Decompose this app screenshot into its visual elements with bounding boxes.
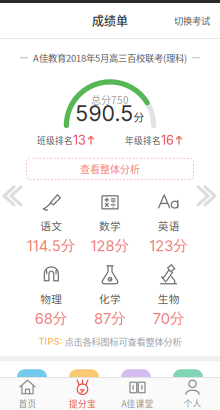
staticText: 70分 — [153, 309, 185, 328]
staticText: 数学 — [99, 218, 121, 233]
staticText: 年级排名 — [125, 134, 161, 146]
staticText: 590.5 — [75, 100, 133, 126]
staticText: TIPS: — [38, 336, 62, 347]
staticText: 13 — [73, 132, 86, 148]
staticText: 提升练习 — [166, 404, 210, 410]
button[interactable]: 物理 — [22, 259, 81, 331]
staticText: 提分宝 — [69, 397, 96, 410]
staticText: 16 — [161, 132, 174, 148]
button[interactable]: 数学 — [81, 186, 139, 258]
staticText: 分 — [133, 109, 144, 124]
staticText: 点击各科图标可查看整体分析 — [64, 335, 181, 348]
staticText: 查看整体分析 — [80, 162, 140, 176]
staticText: 语文 — [40, 218, 62, 233]
staticText: 原卷分析 — [62, 404, 106, 410]
button[interactable]: 化学 — [81, 259, 139, 331]
staticText: 114.5分 — [27, 236, 76, 255]
button[interactable]: 查看整体分析 — [26, 158, 194, 180]
button[interactable]: 语文 — [22, 186, 81, 258]
staticText: A佳课堂 — [121, 397, 153, 410]
staticText: 物理 — [40, 291, 62, 306]
staticText: 试卷解析 — [114, 404, 158, 410]
staticText: 切换考试 — [174, 14, 210, 27]
button[interactable]: 切换考试 — [164, 8, 220, 33]
button[interactable]: 首页 — [0, 378, 55, 410]
button[interactable]: 个人 — [165, 378, 220, 410]
button[interactable]: 试卷解析 — [110, 369, 162, 410]
staticText: 总分750 — [91, 92, 129, 107]
button[interactable]: 错题集 — [6, 369, 58, 410]
staticText: 首页 — [18, 397, 36, 410]
button[interactable]: A佳课堂 — [110, 378, 165, 410]
staticText: 68分 — [35, 309, 68, 328]
button[interactable]: 提升练习 — [162, 369, 214, 410]
staticText: 个人 — [183, 397, 201, 410]
staticText: 化学 — [99, 291, 121, 306]
staticText: 错题集 — [15, 404, 48, 410]
button[interactable]: 英语 — [139, 186, 198, 258]
button[interactable]: 原卷分析 — [58, 369, 110, 410]
staticText: 班级排名 — [37, 134, 73, 146]
staticText: 87分 — [94, 309, 126, 328]
staticText: A佳教育2018年5月高三百校联考(理科) — [33, 51, 187, 64]
staticText: 生物 — [158, 291, 180, 306]
staticText: 128分 — [90, 236, 129, 255]
button[interactable]: 提分宝 — [55, 378, 110, 410]
staticText: 成绩单 — [92, 12, 128, 29]
staticText: 英语 — [158, 218, 180, 233]
button[interactable]: 生物 — [139, 259, 198, 331]
staticText: 123分 — [149, 236, 188, 255]
